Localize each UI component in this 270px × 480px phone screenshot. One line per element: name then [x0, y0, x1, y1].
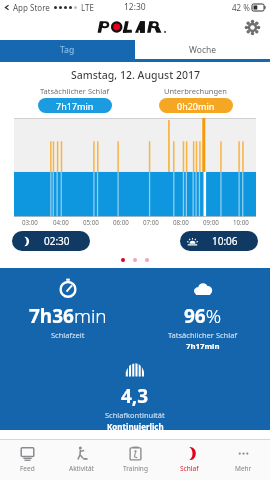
- staticText: 02:30: [44, 234, 70, 248]
- staticText: 10:00: [233, 218, 249, 226]
- staticText: 42 %: [232, 2, 250, 13]
- staticText: 04:00: [53, 218, 69, 226]
- staticText: Aktivität: [69, 464, 94, 473]
- staticText: Tag: [60, 44, 75, 56]
- staticText: 10:06: [212, 234, 238, 248]
- staticText: Woche: [189, 44, 217, 56]
- staticText: 4,3: [121, 383, 149, 409]
- staticText: Samstag, 12. August 2017: [71, 68, 200, 82]
- staticText: Tatsächlicher Schlaf: [168, 330, 237, 340]
- button[interactable]: Unterbrechungen: [135, 86, 256, 113]
- staticText: Mehr: [235, 464, 252, 473]
- button[interactable]: Mehr: [216, 440, 270, 480]
- button[interactable]: 02:30: [12, 231, 90, 251]
- staticText: 12:30: [124, 1, 146, 13]
- staticText: 08:00: [173, 218, 189, 226]
- staticText: 0h20min: [177, 100, 215, 112]
- staticText: 06:00: [113, 218, 129, 226]
- button[interactable]: 7h36min: [0, 268, 270, 430]
- staticText: Feed: [20, 464, 35, 473]
- staticText: 07:00: [143, 218, 159, 226]
- staticText: Training: [123, 464, 148, 473]
- staticText: 7h17min: [56, 100, 94, 112]
- button[interactable]: Woche: [135, 40, 270, 59]
- button[interactable]: Settings: [242, 17, 262, 37]
- staticText: Schlafzeit: [51, 330, 85, 340]
- staticText: Schlafkontinuität: [105, 410, 165, 420]
- button[interactable]: Feed: [0, 440, 54, 480]
- button[interactable]: 10:06: [180, 231, 258, 251]
- button[interactable]: Training: [108, 440, 162, 480]
- staticText: 96%: [184, 303, 222, 329]
- staticText: LTE: [81, 2, 94, 13]
- staticText: Kontinuierlich: [107, 421, 164, 430]
- staticText: 05:00: [83, 218, 99, 226]
- button[interactable]: Tatsächlicher Schlaf: [14, 86, 135, 113]
- button[interactable]: Tag: [0, 40, 135, 59]
- button[interactable]: Aktivität: [54, 440, 108, 480]
- staticText: Tatsächlicher Schlaf: [40, 86, 109, 96]
- staticText: Unterbrechungen: [164, 86, 227, 96]
- button[interactable]: Schlaf: [162, 440, 216, 480]
- staticText: 09:00: [203, 218, 219, 226]
- staticText: 03:00: [22, 218, 38, 226]
- staticText: 7h17min: [186, 341, 220, 352]
- staticText: 7h36min: [29, 303, 107, 329]
- staticText: Schlaf: [180, 464, 199, 473]
- staticText: App Store: [13, 2, 50, 13]
